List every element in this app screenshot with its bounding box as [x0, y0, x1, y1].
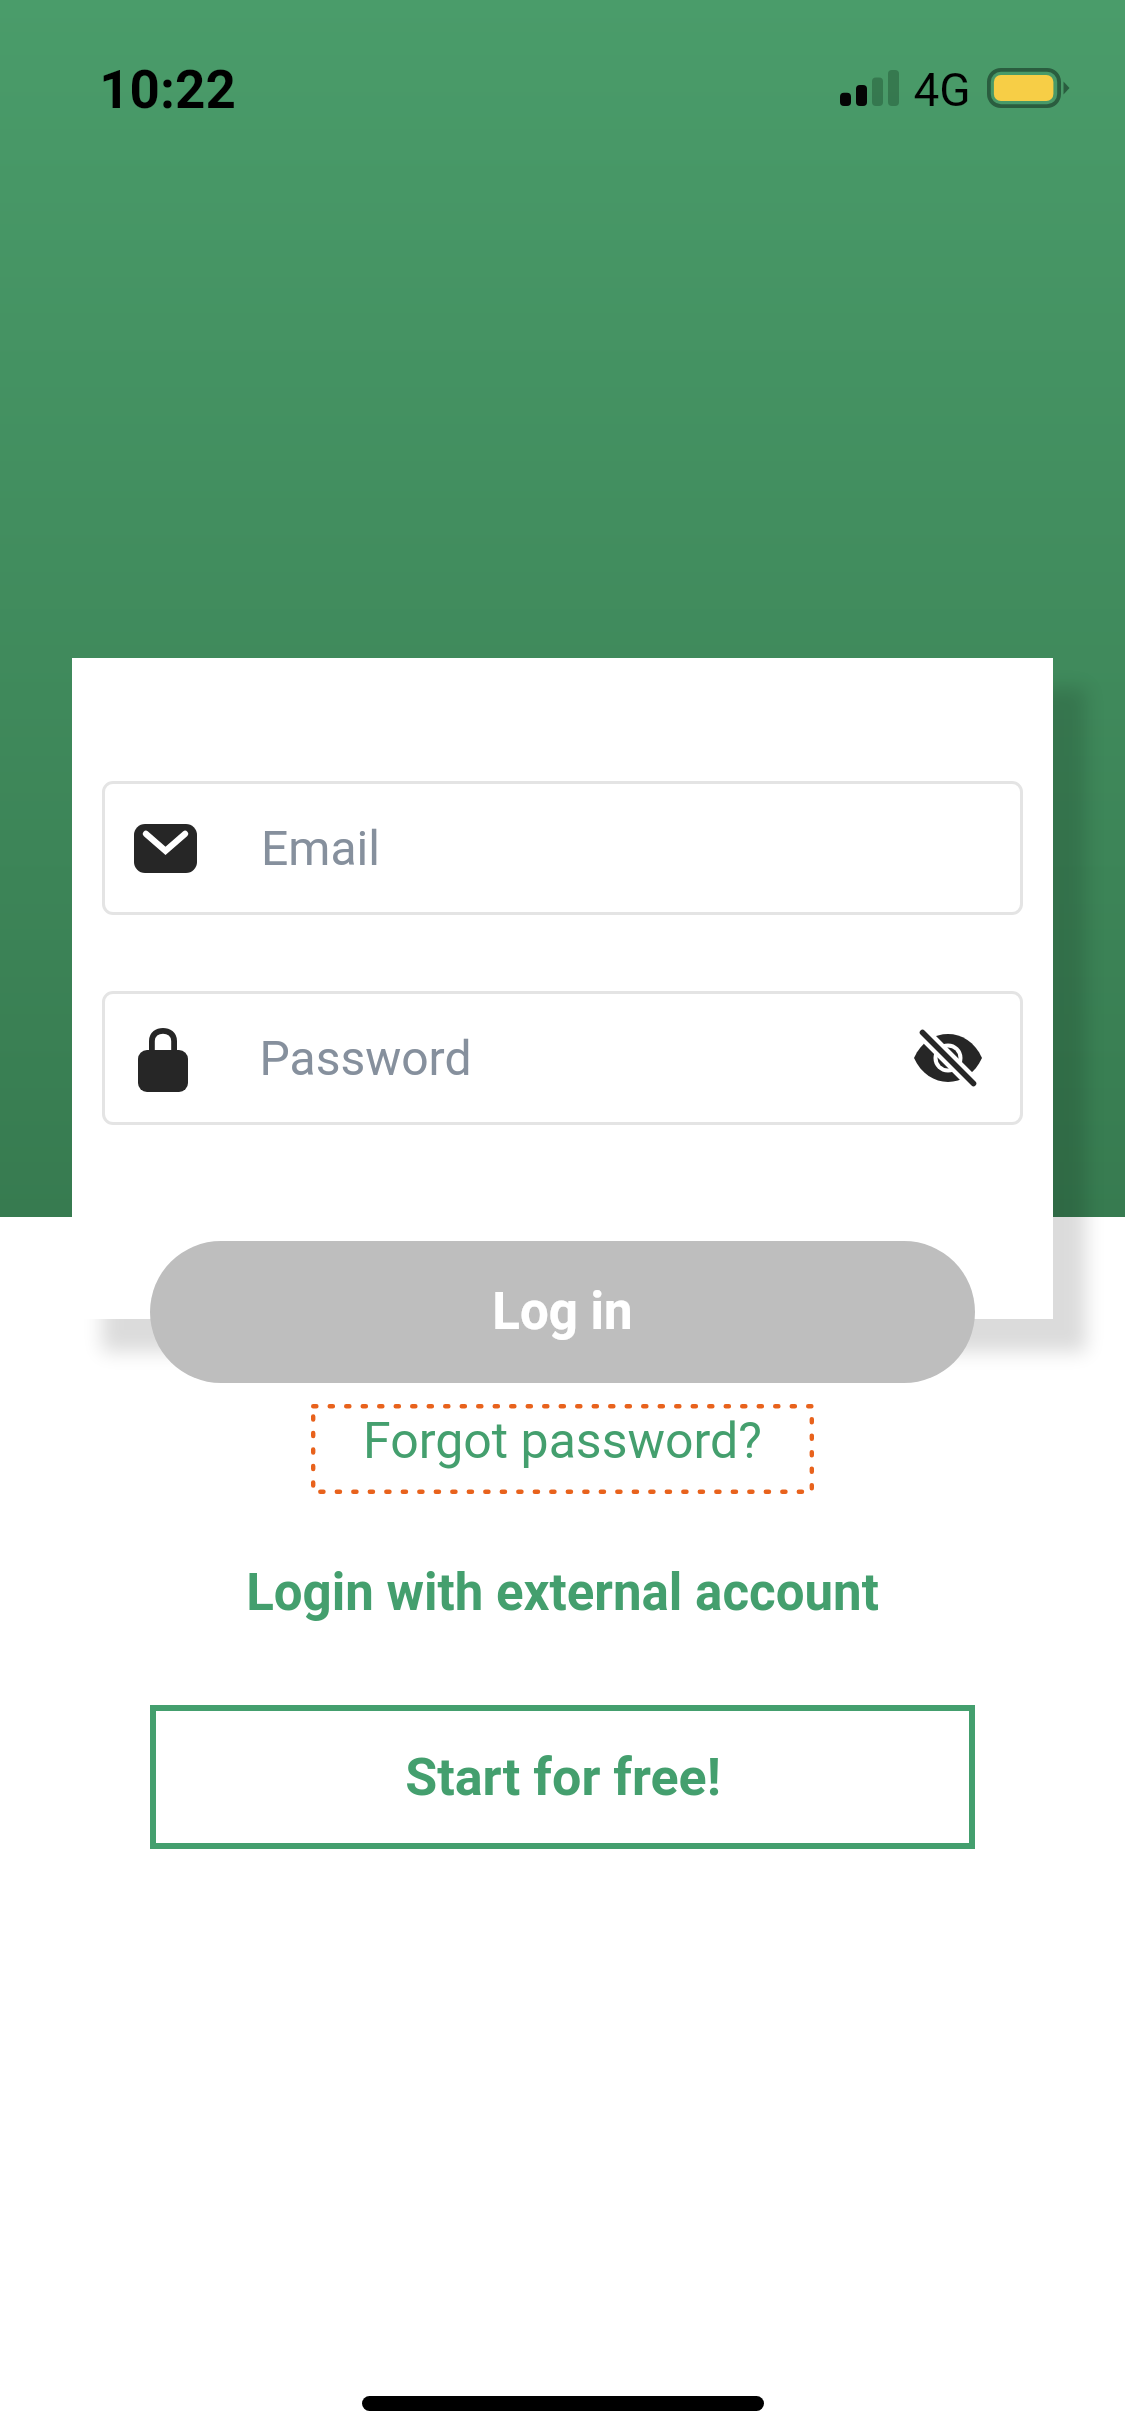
staticText: 10:22 [99, 59, 236, 121]
button[interactable]: Log in [150, 1241, 975, 1383]
staticText: Log in [492, 1282, 633, 1342]
button[interactable]: Forgot password? [311, 1404, 814, 1494]
button[interactable]: Password [102, 991, 1023, 1125]
staticText: Email [261, 820, 380, 876]
button[interactable]: Show password [912, 1030, 984, 1086]
staticText: 4G [913, 63, 971, 117]
button[interactable]: Start for free! [150, 1705, 975, 1849]
staticText: Forgot password? [363, 1412, 762, 1471]
staticText: Password [259, 1030, 472, 1086]
button[interactable]: Email [102, 781, 1023, 915]
staticText: Start for free! [405, 1747, 721, 1808]
staticText: Login with external account [246, 1563, 879, 1623]
